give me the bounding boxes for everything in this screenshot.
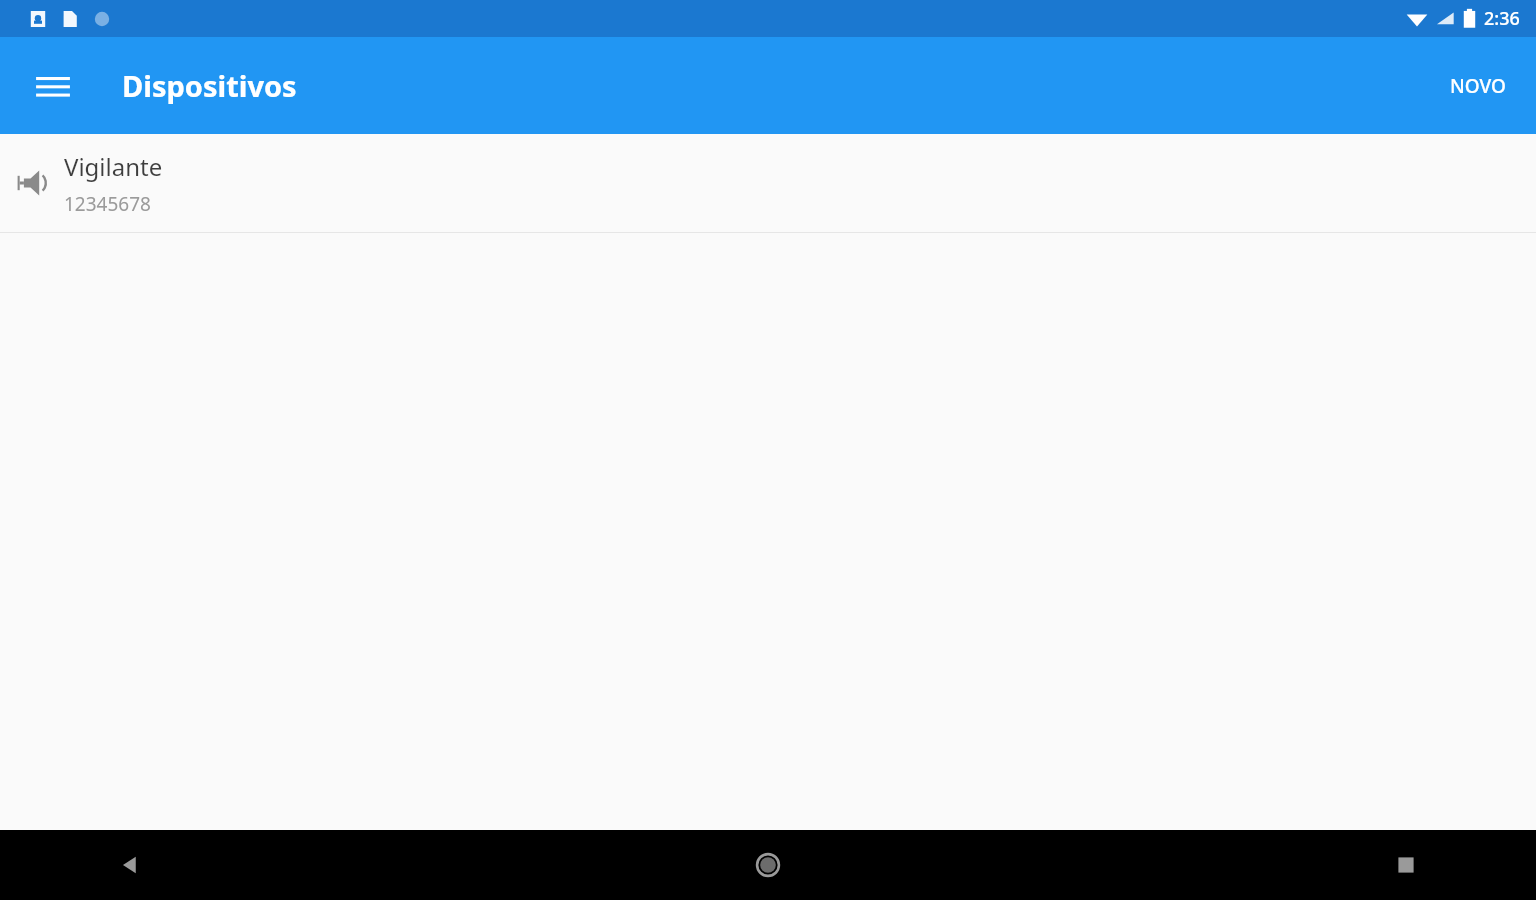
button[interactable]: Home: [738, 835, 798, 895]
button[interactable]: Back: [100, 835, 160, 895]
button[interactable]: NOVO: [1436, 59, 1520, 113]
button[interactable]: Vigilante: [0, 134, 1536, 233]
staticText: 2:36: [1484, 6, 1520, 31]
staticText: Dispositivos: [122, 66, 297, 105]
staticText: Vigilante: [64, 150, 163, 183]
button[interactable]: Open navigation menu: [20, 53, 86, 119]
staticText: 12345678: [64, 191, 151, 217]
staticText: NOVO: [1450, 73, 1506, 99]
button[interactable]: Recent apps: [1376, 835, 1436, 895]
